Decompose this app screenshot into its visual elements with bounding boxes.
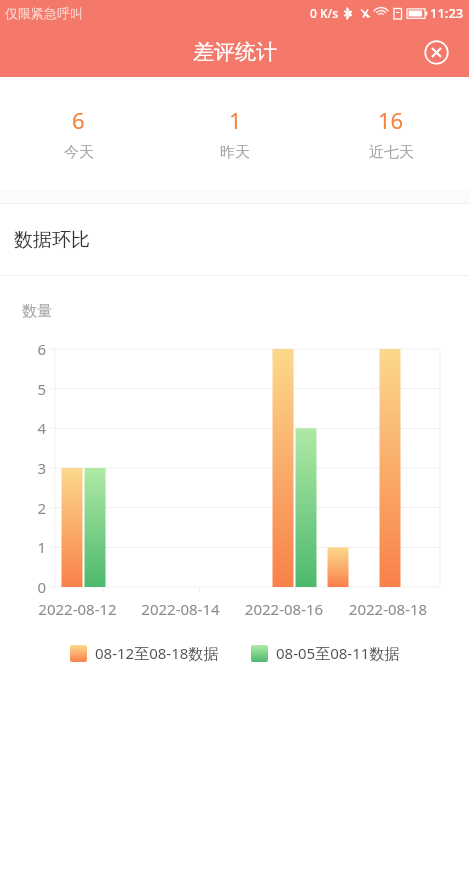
staticText: 数据环比 [14,228,90,252]
staticText: 昨天 [220,143,250,162]
staticText: 近七天 [369,143,414,162]
staticText: 0 [0,577,46,597]
staticText: 2022-08-14 [129,599,232,619]
staticText: 2022-08-16 [232,599,336,619]
staticText: 1 [0,537,46,557]
staticText: 5 [0,379,46,399]
staticText: 08-05至08-11数据 [276,643,400,663]
button[interactable]: 08-12至08-18数据 [70,643,219,663]
staticText: 2022-08-18 [336,599,440,619]
staticText: 仅限紧急呼叫 [5,5,83,21]
staticText: 数量 [22,302,52,321]
staticText: 08-12至08-18数据 [95,643,219,663]
staticText: 4 [0,418,46,438]
button[interactable]: 08-05至08-11数据 [251,643,400,663]
staticText: 2022-08-12 [26,599,129,619]
staticText: 0 K/s [310,5,339,21]
staticText: 3 [0,458,46,478]
staticText: 6 [72,105,85,135]
button[interactable]: Close [419,35,453,69]
staticText: 1 [229,105,242,135]
staticText: 6 [0,339,46,359]
staticText: 差评统计 [193,39,277,65]
staticText: 16 [378,105,404,135]
button[interactable]: 6 [0,105,157,162]
staticText: 今天 [64,143,94,162]
staticText: 11:23 [430,4,464,22]
button[interactable]: 1 [157,105,313,162]
staticText: 2 [0,498,46,518]
button[interactable]: 16 [313,105,469,162]
